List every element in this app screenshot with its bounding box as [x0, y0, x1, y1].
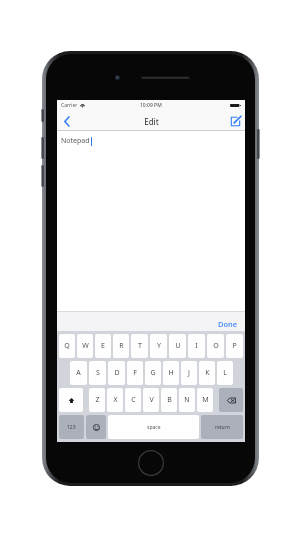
staticText: Y	[157, 341, 161, 351]
button[interactable]: G	[145, 361, 161, 385]
staticText: U	[175, 341, 181, 351]
button[interactable]: P	[226, 334, 243, 358]
staticText: Notepad	[61, 136, 90, 146]
staticText: D	[114, 368, 120, 378]
button[interactable]: L	[217, 361, 233, 385]
button[interactable]: D	[108, 361, 125, 385]
button[interactable]: Back	[57, 111, 77, 131]
button[interactable]: Notepad	[57, 131, 245, 311]
staticText: H	[168, 368, 174, 378]
button[interactable]: 123	[59, 415, 84, 439]
button[interactable]: V	[143, 388, 159, 412]
button[interactable]: T	[131, 334, 148, 358]
button[interactable]: M	[197, 388, 213, 412]
staticText: Z	[95, 395, 100, 405]
staticText: space	[147, 424, 161, 431]
button[interactable]: O	[207, 334, 224, 358]
button[interactable]: Shift	[59, 388, 83, 412]
button[interactable]: J	[181, 361, 197, 385]
button[interactable]: B	[161, 388, 177, 412]
button[interactable]: H	[163, 361, 179, 385]
staticText: T	[138, 341, 142, 351]
button[interactable]: C	[125, 388, 141, 412]
button[interactable]: R	[113, 334, 129, 358]
staticText: S	[96, 368, 100, 378]
staticText: B	[167, 395, 172, 405]
button[interactable]: U	[169, 334, 186, 358]
staticText: M	[202, 395, 209, 405]
staticText: return	[215, 424, 230, 431]
button[interactable]: Compose	[225, 111, 245, 131]
button[interactable]: space	[108, 415, 199, 439]
staticText: L	[223, 368, 227, 378]
staticText: J	[188, 368, 190, 378]
button[interactable]: I	[188, 334, 205, 358]
staticText: O	[213, 341, 219, 351]
staticText: P	[232, 341, 237, 351]
staticText: A	[76, 368, 81, 378]
staticText: Done	[218, 319, 238, 329]
button[interactable]: X	[107, 388, 123, 412]
staticText: F	[133, 368, 137, 378]
button[interactable]: Y	[150, 334, 167, 358]
staticText: C	[131, 395, 136, 405]
staticText: Q	[64, 341, 70, 351]
button[interactable]: Backspace	[219, 388, 243, 412]
button[interactable]: K	[199, 361, 215, 385]
staticText: 10:09 PM	[140, 102, 162, 109]
staticText: W	[82, 341, 89, 351]
staticText: K	[205, 368, 210, 378]
button[interactable]: return	[201, 415, 243, 439]
staticText: N	[184, 395, 190, 405]
staticText: I	[195, 341, 198, 351]
button[interactable]: W	[77, 334, 93, 358]
staticText: G	[150, 368, 156, 378]
button[interactable]: N	[179, 388, 195, 412]
staticText: Edit	[144, 116, 159, 127]
button[interactable]: Z	[89, 388, 105, 412]
button[interactable]: S	[89, 361, 106, 385]
staticText: X	[113, 395, 118, 405]
staticText: Carrier	[61, 102, 78, 109]
staticText: 123	[67, 424, 76, 431]
button[interactable]: A	[70, 361, 87, 385]
button[interactable]: F	[127, 361, 143, 385]
button[interactable]: E	[95, 334, 111, 358]
button[interactable]: Done	[216, 318, 240, 330]
button[interactable]: Emoji	[86, 415, 106, 439]
staticText: V	[149, 395, 154, 405]
staticText: R	[119, 341, 124, 351]
staticText: E	[101, 341, 105, 351]
button[interactable]: Q	[59, 334, 75, 358]
